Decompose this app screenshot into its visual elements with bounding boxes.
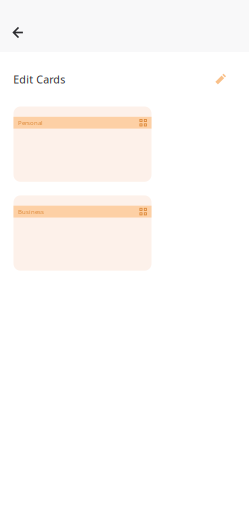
staticText: Edit Cards [13,72,65,86]
button[interactable]: Personal [13,106,151,182]
button[interactable]: Edit [211,70,229,88]
staticText: Business [18,207,44,216]
button[interactable]: Business [13,195,151,271]
staticText: Personal [18,119,43,127]
button[interactable]: Back [6,20,30,44]
